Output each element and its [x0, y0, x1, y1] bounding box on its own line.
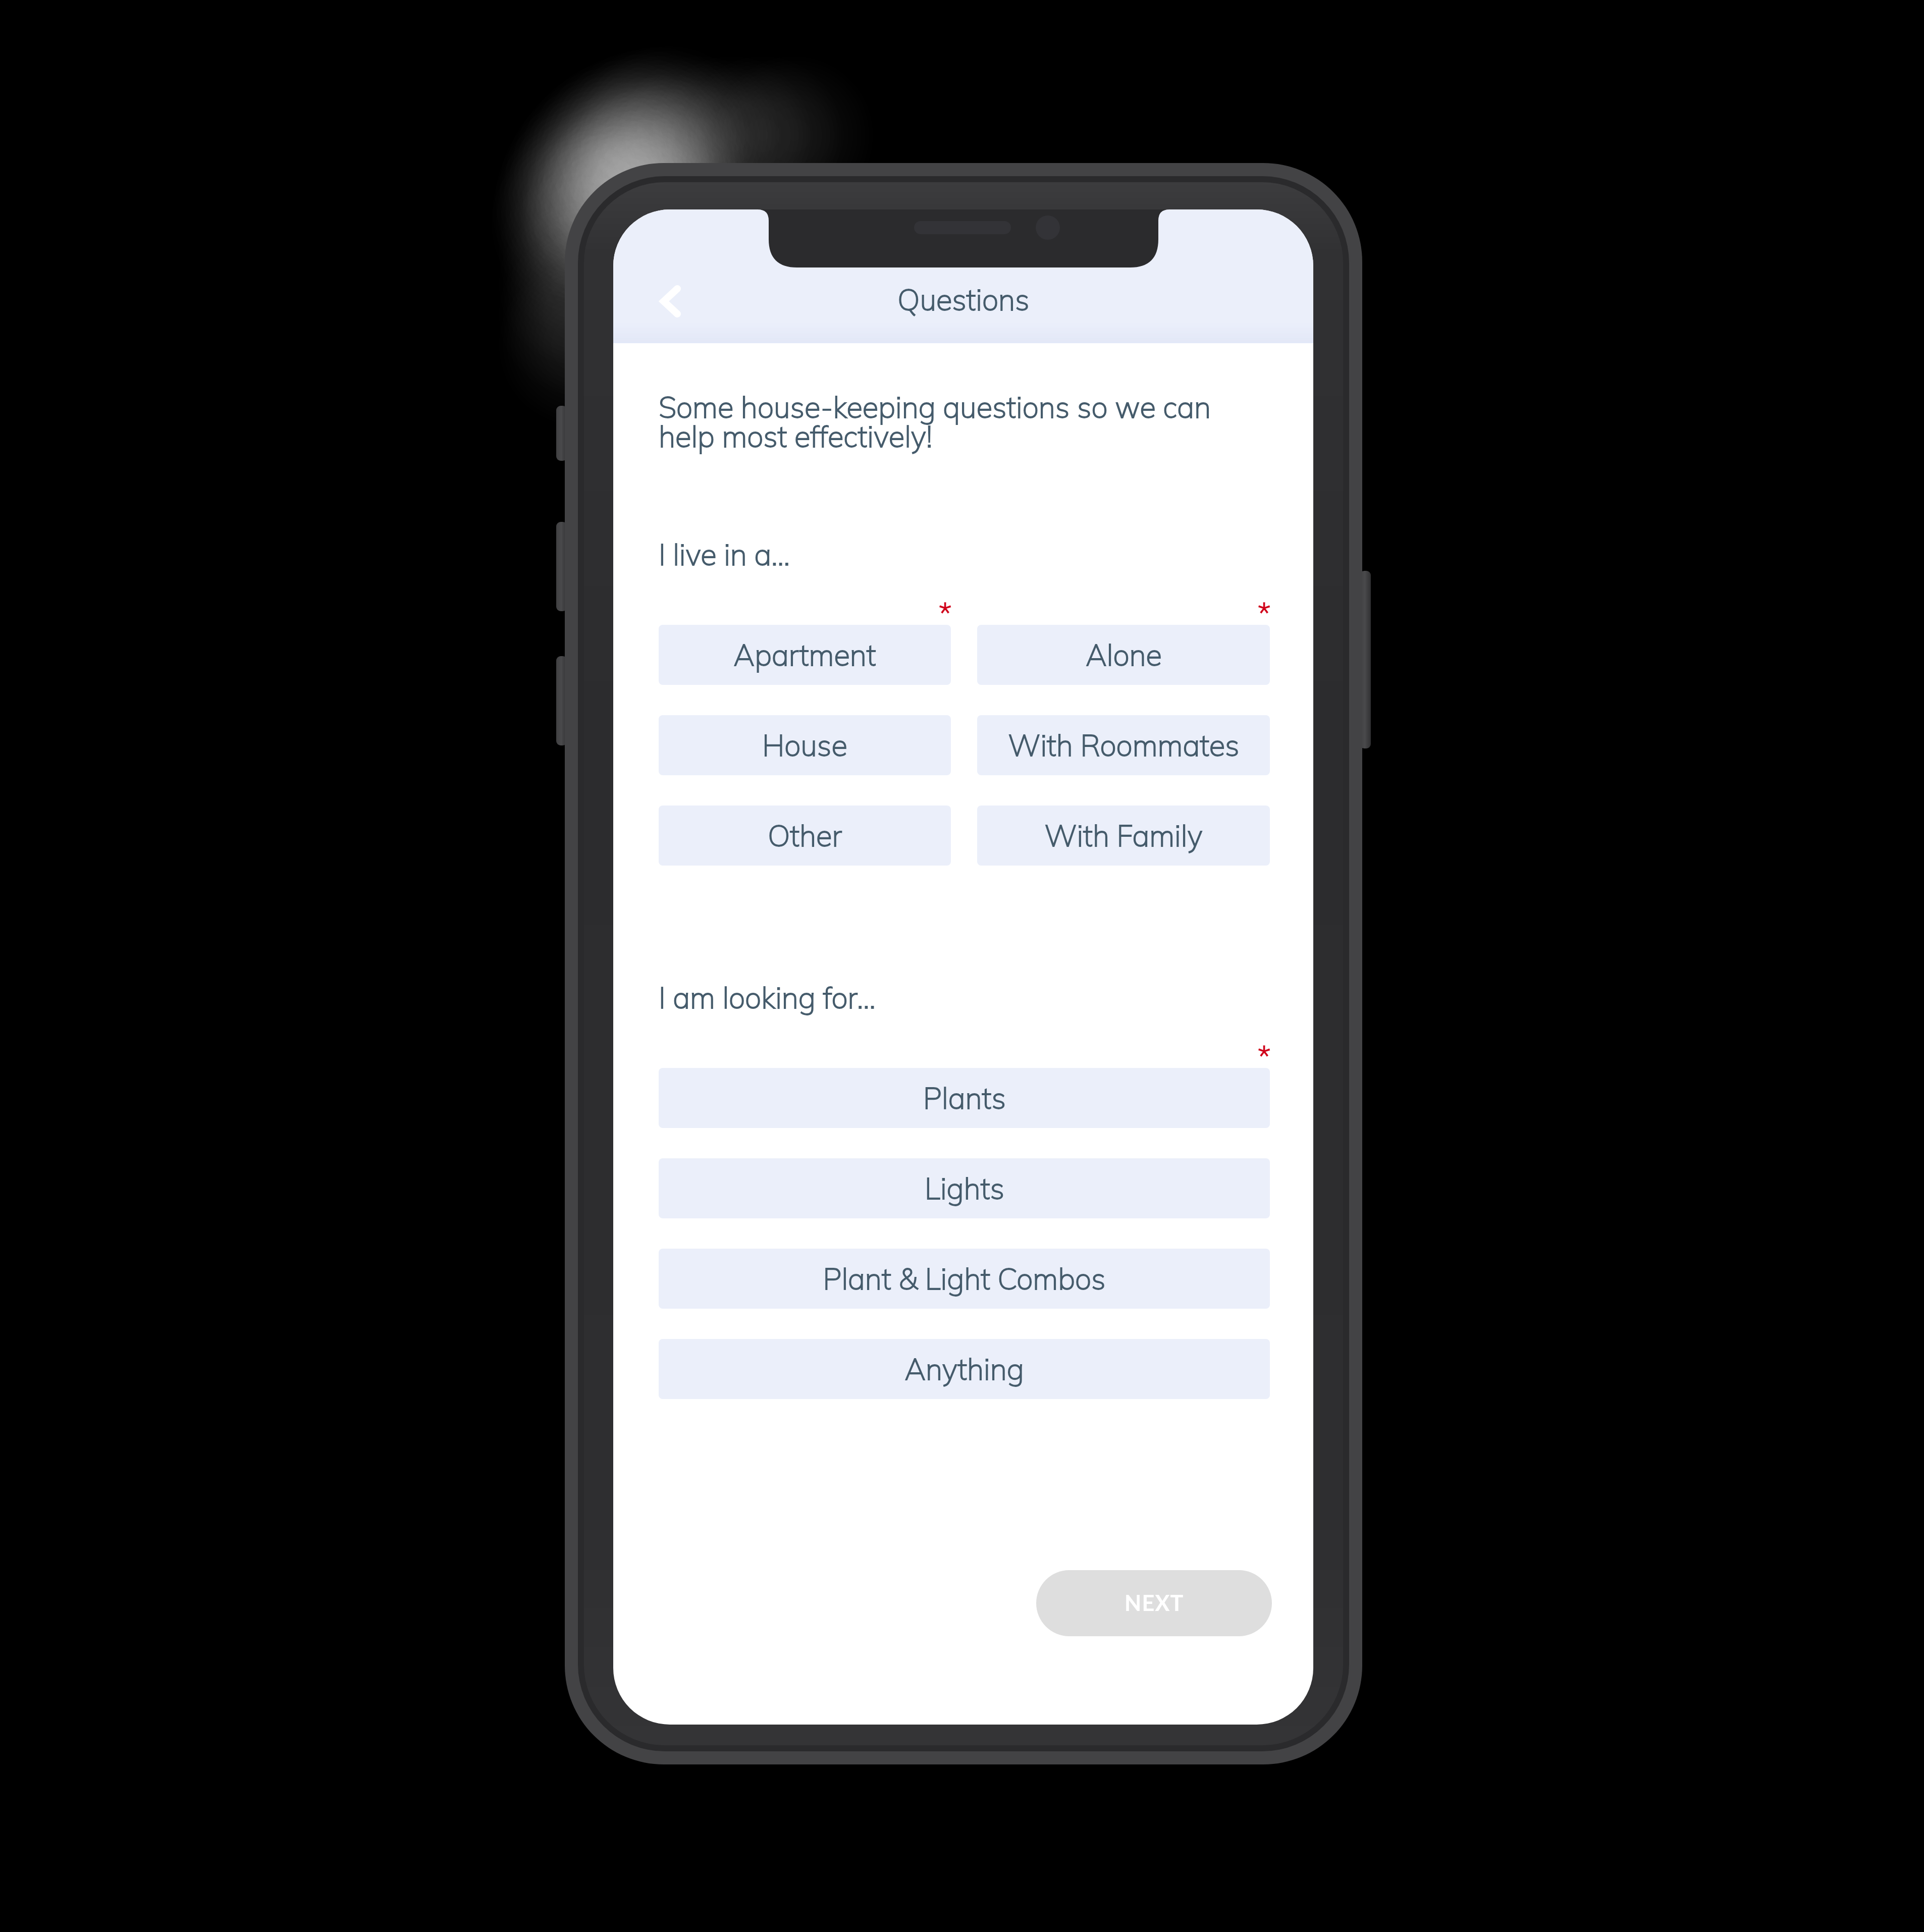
staticText: Questions	[897, 281, 1030, 318]
staticText: Lights	[925, 1170, 1004, 1207]
staticText: *	[1258, 596, 1271, 619]
button[interactable]: House	[659, 715, 951, 775]
staticText: Apartment	[733, 636, 876, 673]
staticText: I am looking for...	[659, 979, 876, 1016]
staticText: Anything	[904, 1351, 1024, 1387]
staticText: Plant & Light Combos	[823, 1260, 1106, 1297]
button[interactable]: With Roommates	[977, 715, 1270, 775]
staticText: Some house-keeping questions so we can h…	[659, 389, 1211, 455]
staticText: *	[939, 596, 952, 619]
button[interactable]: Lights	[659, 1158, 1270, 1218]
button[interactable]: NEXT	[1036, 1570, 1272, 1636]
button[interactable]: Back	[632, 265, 706, 338]
button[interactable]: Other	[659, 806, 951, 866]
button[interactable]: Plants	[659, 1068, 1270, 1128]
staticText: Alone	[1086, 636, 1162, 673]
button[interactable]: Alone	[977, 625, 1270, 685]
staticText: NEXT	[1125, 1590, 1184, 1616]
button[interactable]: Anything	[659, 1339, 1270, 1399]
staticText: House	[762, 727, 847, 764]
staticText: Other	[768, 817, 842, 854]
button[interactable]: With Family	[977, 806, 1270, 866]
button[interactable]: Plant & Light Combos	[659, 1249, 1270, 1309]
staticText: With Family	[1044, 817, 1203, 854]
staticText: I live in a...	[659, 536, 790, 573]
staticText: *	[1258, 1039, 1271, 1062]
staticText: With Roommates	[1008, 727, 1240, 764]
button[interactable]: Apartment	[659, 625, 951, 685]
staticText: Plants	[923, 1080, 1006, 1116]
